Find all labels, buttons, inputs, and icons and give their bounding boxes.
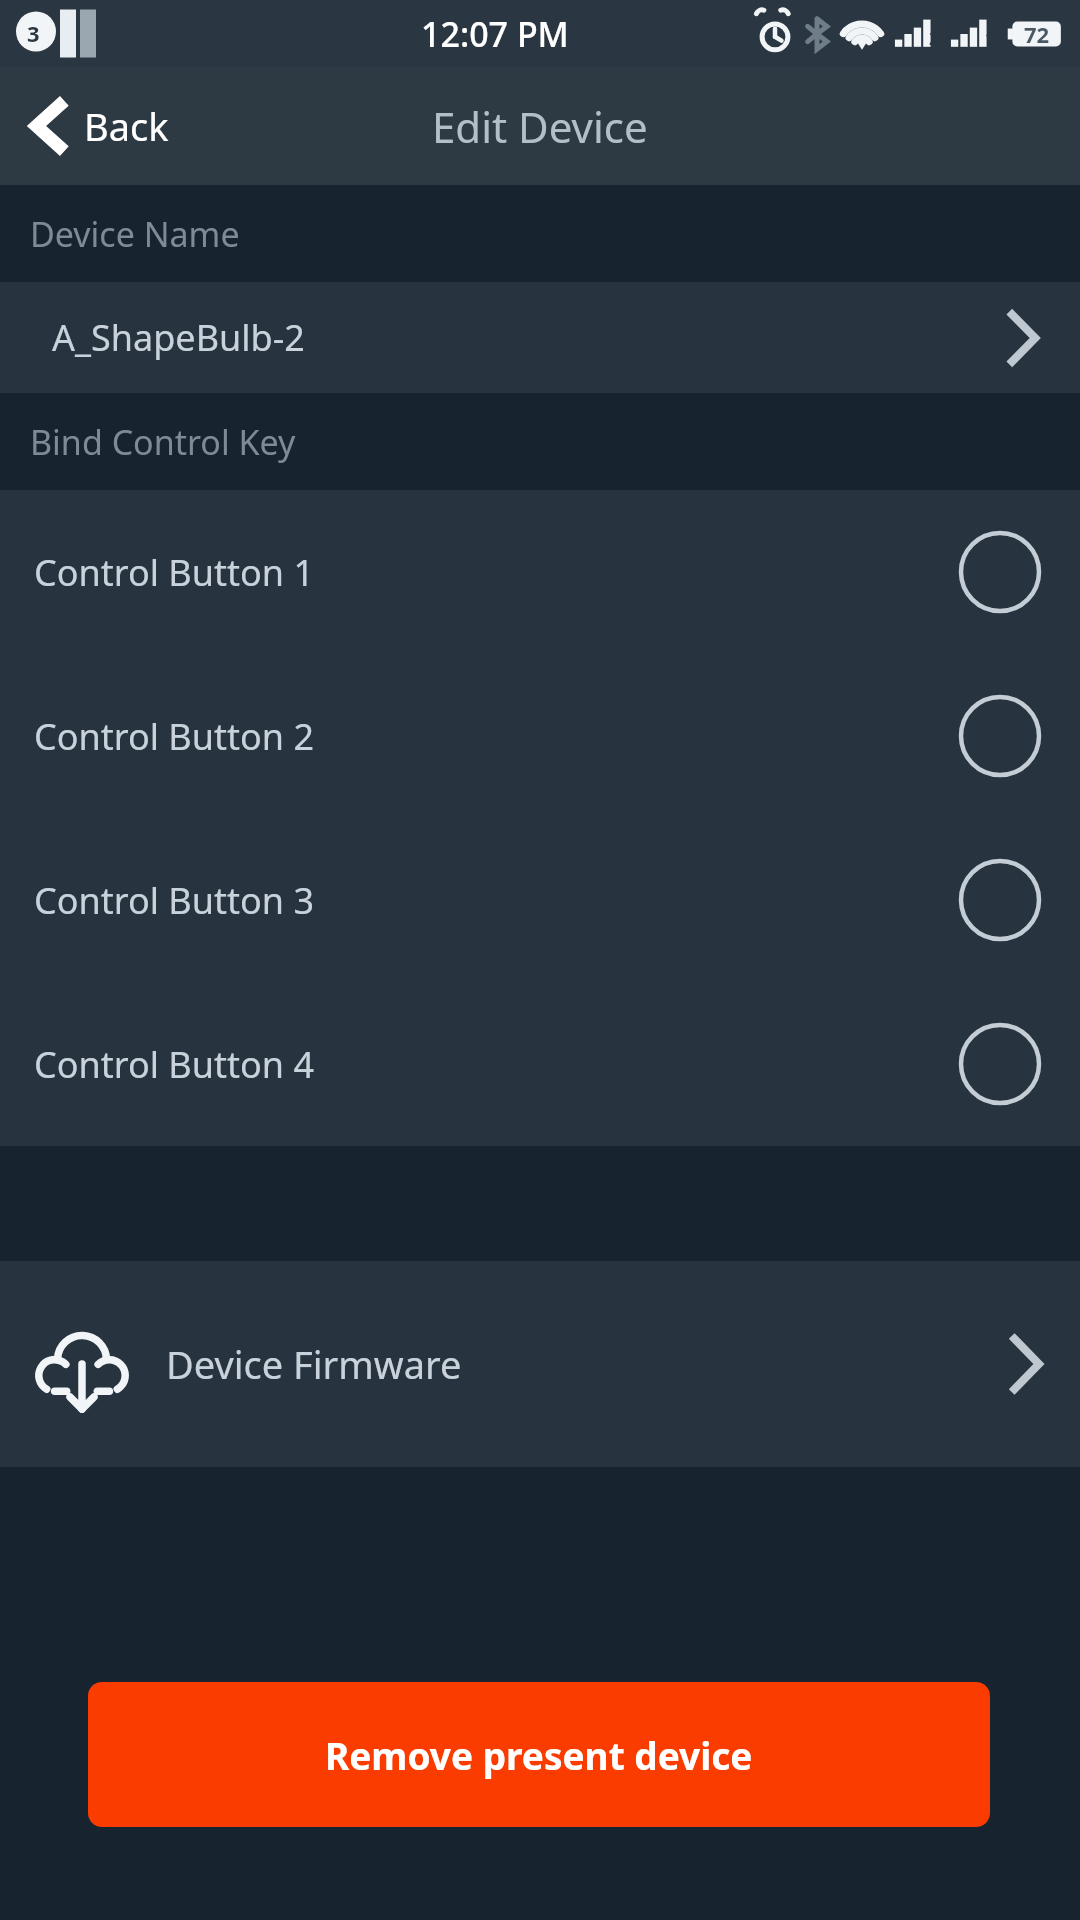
staticText: A_ShapeBulb-2 bbox=[52, 313, 1006, 362]
staticText: 72 bbox=[1024, 19, 1050, 49]
staticText: 2 bbox=[929, 27, 939, 50]
staticText: Control Button 2 bbox=[34, 712, 958, 761]
button[interactable]: A_ShapeBulb-2 bbox=[0, 282, 1080, 393]
staticText: Edit Device bbox=[432, 98, 648, 155]
button[interactable]: Control Button 2 bbox=[0, 654, 1080, 818]
staticText: Bind Control Key bbox=[30, 419, 296, 465]
button[interactable]: Back bbox=[0, 67, 199, 185]
button[interactable]: Remove present device bbox=[88, 1682, 990, 1827]
staticText: 1 bbox=[985, 27, 995, 50]
staticText: 3 bbox=[27, 18, 40, 48]
staticText: 12:07 PM bbox=[421, 11, 569, 57]
button[interactable]: Control Button 3 bbox=[0, 818, 1080, 982]
staticText: Control Button 4 bbox=[34, 1040, 958, 1089]
staticText: Control Button 1 bbox=[34, 548, 958, 597]
staticText: Back bbox=[84, 100, 169, 152]
staticText: Device Name bbox=[30, 211, 240, 257]
staticText: Remove present device bbox=[325, 1730, 753, 1780]
button[interactable]: Control Button 1 bbox=[0, 490, 1080, 654]
staticText: Control Button 3 bbox=[34, 876, 958, 925]
button[interactable]: Device Firmware bbox=[0, 1261, 1080, 1467]
staticText: Device Firmware bbox=[166, 1338, 1008, 1390]
button[interactable]: Control Button 4 bbox=[0, 982, 1080, 1146]
